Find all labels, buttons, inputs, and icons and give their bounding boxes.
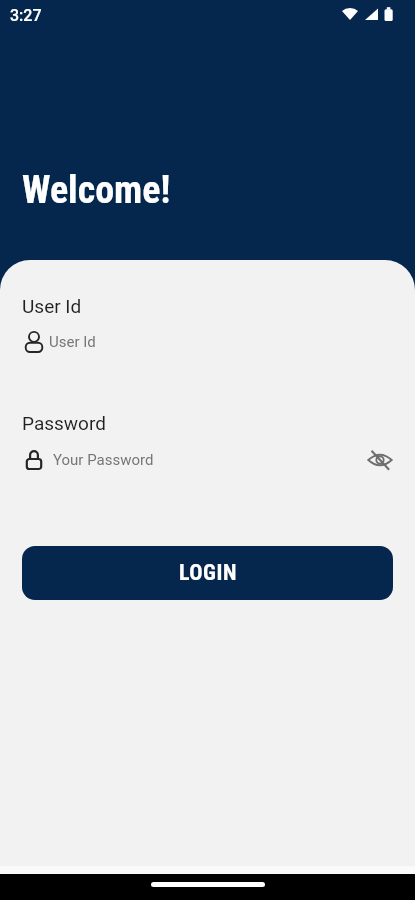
staticText: User Id bbox=[22, 295, 82, 317]
staticText: 3:27 bbox=[10, 6, 42, 25]
staticText: Welcome! bbox=[22, 168, 171, 213]
staticText: Your Password bbox=[53, 451, 154, 469]
staticText: Password bbox=[22, 412, 106, 434]
staticText: LOGIN bbox=[179, 560, 237, 586]
staticText: User Id bbox=[49, 333, 96, 351]
